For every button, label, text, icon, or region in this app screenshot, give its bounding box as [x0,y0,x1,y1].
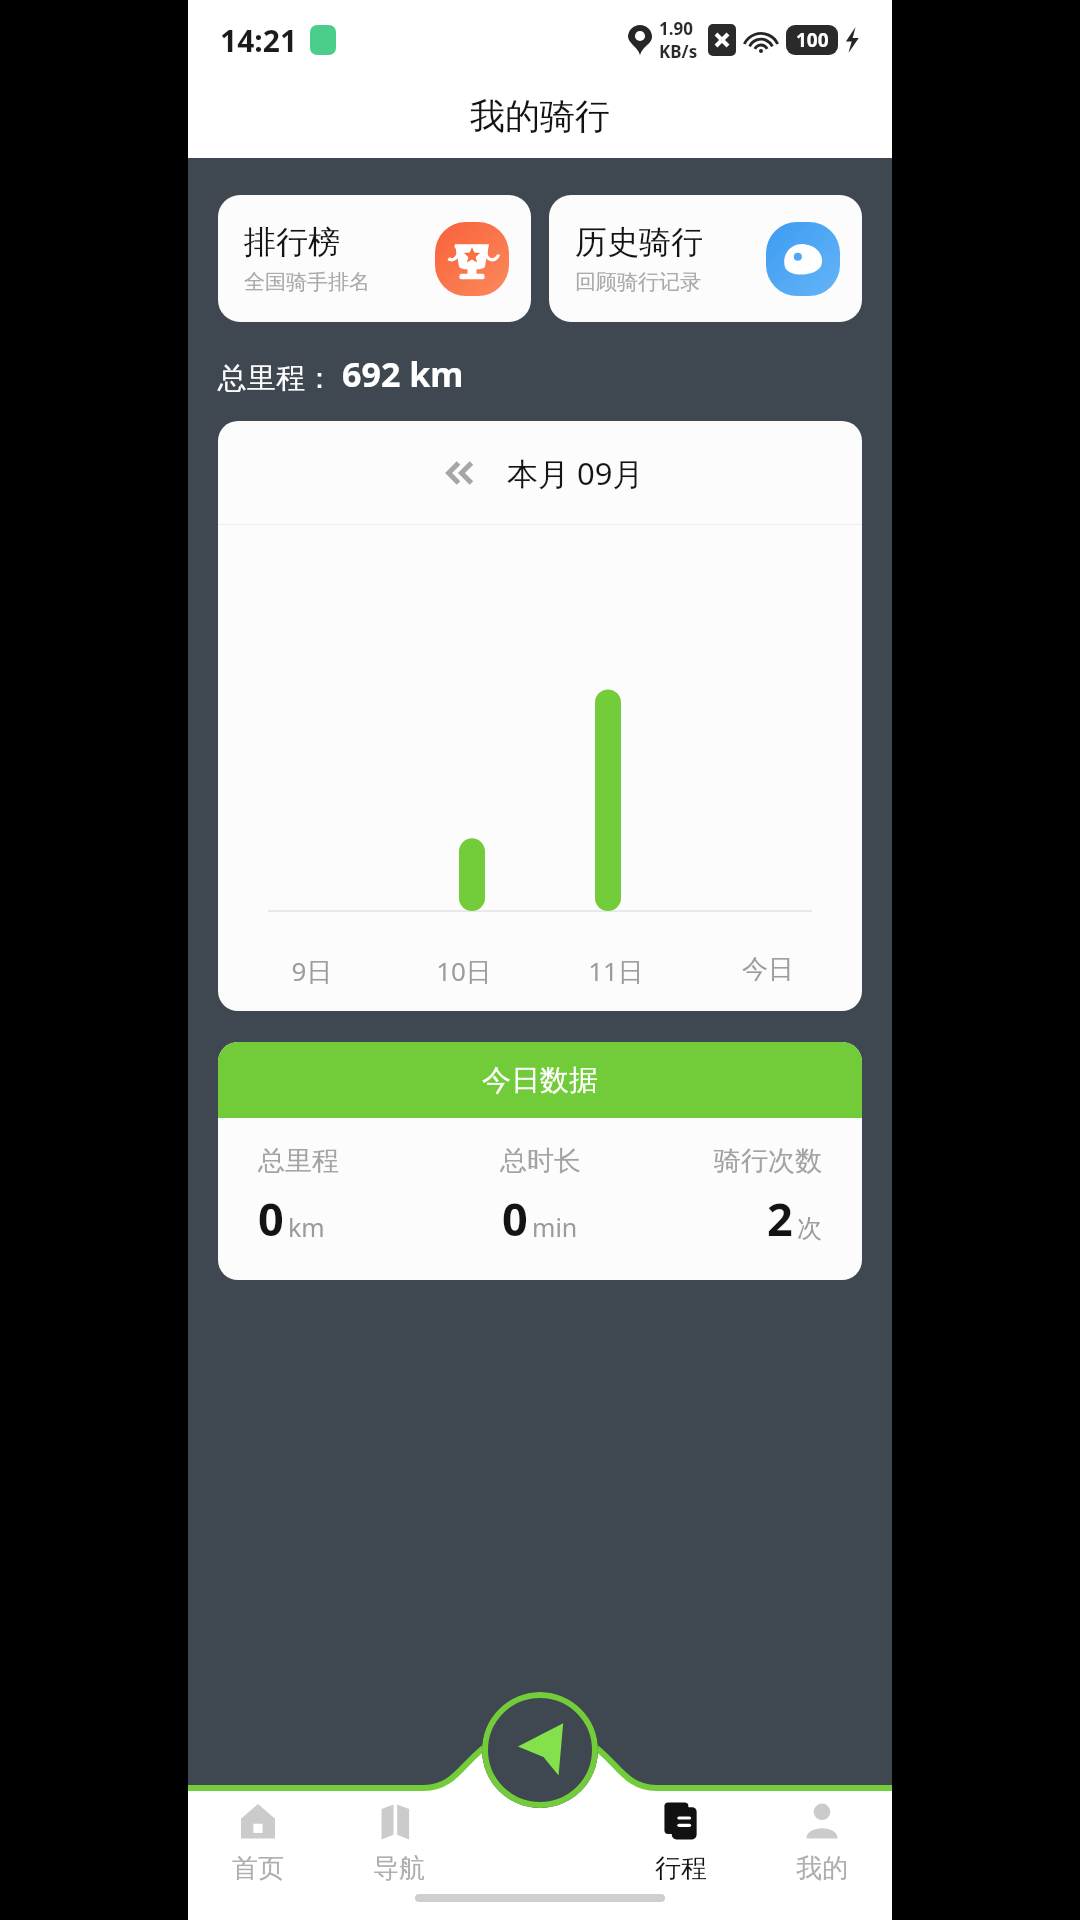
button[interactable]: Previous month [437,452,483,494]
button[interactable]: 行程 [610,1792,751,1891]
staticText: 次 [797,1213,822,1244]
staticText: 总时长 [500,1144,581,1178]
staticText: 总里程： [218,360,334,397]
staticText: 导航 [373,1852,425,1885]
staticText: 1.90 [659,17,693,40]
staticText: 100 [796,27,829,53]
staticText: km [288,1210,325,1244]
staticText: 行程 [655,1852,707,1885]
button[interactable]: 导航 [328,1792,469,1891]
button[interactable]: 我的 [751,1792,892,1891]
staticText: 今日 [692,953,844,986]
staticText: 今日数据 [482,1062,598,1099]
staticText: 全国骑手排名 [244,269,370,295]
staticText: 0 [502,1188,528,1249]
staticText: 692 km [342,351,464,397]
button[interactable]: 排行榜 [218,195,531,322]
staticText: 10日 [388,953,540,989]
staticText: 本月 09月 [507,452,644,494]
button[interactable]: 历史骑行 [549,195,862,322]
staticText: 11日 [540,953,692,989]
staticText: KB/s [659,40,698,63]
staticText: 0 [258,1188,284,1249]
staticText: 排行榜 [244,222,340,262]
staticText: 首页 [232,1852,284,1885]
staticText: 骑行次数 [714,1144,822,1178]
staticText: min [532,1210,578,1244]
staticText: 2 [767,1188,793,1249]
staticText: 总里程 [258,1144,339,1178]
staticText: 我的 [796,1852,848,1885]
staticText: 我的骑行 [470,94,610,138]
staticText: 历史骑行 [575,222,703,262]
staticText: 回顾骑行记录 [575,269,701,295]
button[interactable]: Start ride [482,1692,598,1808]
staticText: 9日 [236,953,388,989]
button[interactable]: 首页 [188,1792,328,1891]
staticText: 14:21 [220,20,298,61]
